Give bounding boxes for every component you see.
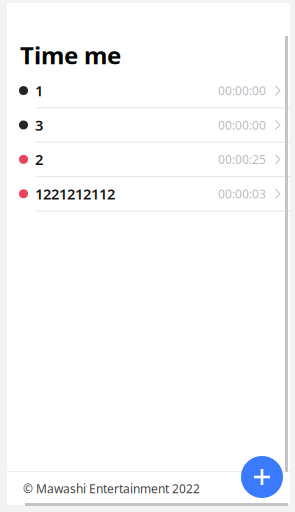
- staticText: 00:00:25: [218, 151, 266, 167]
- staticText: © Mawashi Entertainment 2022: [23, 480, 200, 496]
- staticText: 00:00:00: [218, 83, 266, 98]
- button[interactable]: 1: [7, 74, 290, 108]
- staticText: 2: [35, 150, 43, 169]
- staticText: 00:00:03: [218, 186, 266, 202]
- button[interactable]: 2: [7, 143, 290, 177]
- button[interactable]: 3: [7, 108, 290, 143]
- staticText: 1: [35, 81, 43, 100]
- button[interactable]: Add timer: [241, 456, 283, 498]
- staticText: 3: [35, 115, 43, 135]
- staticText: Time me: [20, 39, 121, 71]
- staticText: 1221212112: [35, 184, 115, 203]
- staticText: 00:00:00: [218, 117, 266, 133]
- button[interactable]: 1221212112: [7, 177, 290, 211]
